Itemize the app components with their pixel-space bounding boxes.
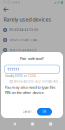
button[interactable]: Recent apps [47, 120, 54, 128]
button[interactable]: Back [2, 5, 11, 13]
button[interactable]: Allow access to your contacts and call h… [1, 78, 63, 84]
staticText: You may also need to type this PIN on th… [4, 84, 55, 95]
button[interactable]: 80:4D:8A:44:55:66 [0, 25, 65, 35]
button[interactable]: OK [37, 108, 52, 115]
button[interactable]: 58:D7:79:DE:11:A4 [0, 35, 65, 45]
staticText: F8:87:F1:23:80:C9 [10, 48, 37, 52]
staticText: 58:D7:79:DE:11:A4 [10, 38, 38, 42]
staticText: 10:45 [2, 1, 11, 4]
staticText: 111111 [7, 67, 19, 72]
staticText: 80:4D:8A:44:55:66 [10, 28, 39, 32]
button[interactable]: Back [11, 120, 18, 128]
button[interactable]: Cancel [19, 108, 35, 115]
button[interactable]: F8:87:F1:23:80:C9 [0, 45, 65, 55]
staticText: OK [42, 110, 46, 113]
staticText: Allow access to your contacts and call h… [14, 80, 61, 83]
button[interactable]: Home [29, 120, 36, 128]
staticText: Cancel [22, 110, 31, 113]
staticText: Rarely used devices [3, 16, 51, 23]
staticText: Pair with text? [20, 56, 44, 61]
staticText: Usually 0000 or 1234 [5, 74, 36, 78]
